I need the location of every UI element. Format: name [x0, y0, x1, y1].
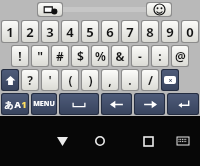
staticText: 5 [86, 23, 94, 41]
staticText: 6 [106, 23, 114, 41]
staticText: @ [175, 48, 186, 64]
button[interactable]: ) [82, 70, 98, 90]
staticText: " [37, 48, 43, 64]
staticText: 0 [186, 23, 194, 41]
button[interactable]: . [122, 70, 138, 90]
staticText: 2 [26, 23, 34, 41]
button[interactable]: " [32, 46, 48, 66]
staticText: . [128, 72, 132, 88]
button[interactable]: Enter [168, 94, 198, 114]
button[interactable]: 4 [62, 21, 78, 42]
button[interactable]: ? [22, 70, 38, 90]
button[interactable]: Change input mode [2, 94, 28, 114]
button[interactable]: ' [42, 70, 58, 90]
button[interactable]: Space [60, 94, 98, 114]
button[interactable]: 7 [122, 21, 138, 42]
button[interactable]: Cursor right [135, 94, 164, 114]
staticText: ? [27, 72, 33, 88]
button[interactable]: 2 [22, 21, 38, 42]
staticText: : [158, 48, 162, 64]
staticText: MENU [33, 99, 55, 109]
button[interactable]: ! [12, 46, 28, 66]
button[interactable]: / [142, 70, 158, 90]
button[interactable]: 0 [182, 21, 198, 42]
button[interactable]: , [102, 70, 118, 90]
staticText: × [168, 76, 173, 84]
staticText: A [14, 98, 21, 110]
staticText: あ [4, 99, 14, 110]
staticText: 8 [146, 23, 154, 41]
staticText: ) [88, 72, 93, 88]
button[interactable]: Menu [32, 94, 56, 114]
button[interactable]: Backspace [162, 70, 178, 90]
button[interactable]: ( [62, 70, 78, 90]
staticText: 7 [126, 23, 134, 41]
button[interactable]: Recent apps [138, 131, 158, 151]
button[interactable]: % [92, 46, 108, 66]
button[interactable]: 8 [142, 21, 158, 42]
button[interactable]: # [52, 46, 68, 66]
button[interactable]: & [112, 46, 128, 66]
button[interactable]: 1 [2, 21, 18, 42]
button[interactable]: Home [90, 131, 110, 151]
staticText: 9 [166, 23, 174, 41]
button[interactable]: Back [52, 131, 72, 151]
button[interactable]: $ [72, 46, 88, 66]
staticText: ' [48, 72, 52, 88]
button[interactable]: - [132, 46, 148, 66]
staticText: 1 [6, 23, 14, 41]
staticText: $ [77, 48, 84, 64]
staticText: & [115, 48, 125, 64]
staticText: ( [68, 72, 73, 88]
button[interactable]: Cursor left [102, 94, 131, 114]
button[interactable]: : [152, 46, 168, 66]
staticText: 3 [46, 23, 54, 41]
staticText: ! [18, 48, 22, 64]
button[interactable]: 5 [82, 21, 98, 42]
staticText: / [148, 72, 153, 88]
staticText: % [95, 48, 106, 64]
button[interactable]: Emoji [147, 3, 171, 16]
button[interactable]: Hide keyboard [174, 132, 192, 150]
staticText: 1 [21, 98, 27, 110]
button[interactable]: Input settings [38, 3, 62, 16]
staticText: 4 [66, 23, 74, 41]
button[interactable]: 6 [102, 21, 118, 42]
staticText: - [138, 48, 142, 64]
button[interactable]: 3 [42, 21, 58, 42]
button[interactable]: @ [172, 46, 188, 66]
staticText: , [108, 72, 112, 88]
button[interactable]: 9 [162, 21, 178, 42]
staticText: # [56, 48, 64, 64]
button[interactable]: Shift [2, 70, 18, 90]
